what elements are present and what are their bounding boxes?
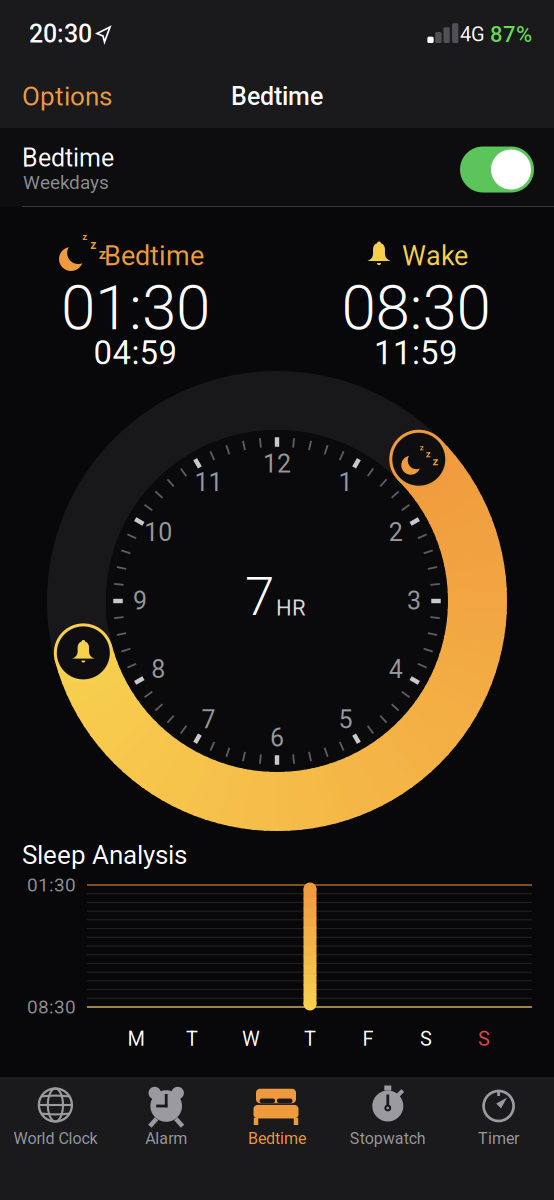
staticText: 04:59 xyxy=(93,334,177,372)
staticText: T xyxy=(186,1027,198,1051)
button[interactable]: Bedtime xyxy=(222,1078,332,1200)
staticText: Options xyxy=(22,81,112,112)
staticText: T xyxy=(304,1027,316,1051)
staticText: z xyxy=(432,455,438,468)
button[interactable]: Stopwatch xyxy=(333,1078,443,1200)
staticText: 01:30 xyxy=(27,874,76,896)
staticText: Weekdays xyxy=(23,171,109,194)
button[interactable]: Bedtime Weekdays toggle xyxy=(460,146,534,192)
staticText: 20:30 xyxy=(29,19,92,49)
staticText: 7 xyxy=(245,566,274,628)
button[interactable]: World Clock xyxy=(0,1078,110,1200)
staticText: 01:30 xyxy=(61,272,210,344)
staticText: Timer xyxy=(478,1129,519,1148)
staticText: 11 xyxy=(194,468,222,497)
staticText: 3 xyxy=(407,586,421,616)
staticText: z xyxy=(99,245,106,262)
staticText: 9 xyxy=(133,586,147,616)
staticText: 5 xyxy=(338,705,352,734)
staticText: Bedtime xyxy=(248,1129,306,1148)
staticText: z xyxy=(420,443,424,452)
staticText: Bedtime xyxy=(231,82,323,111)
staticText: 7 xyxy=(201,705,215,734)
staticText: S xyxy=(478,1027,490,1051)
staticText: 8 xyxy=(151,655,165,684)
staticText: 10 xyxy=(144,518,172,547)
staticText: HR xyxy=(276,595,306,621)
button[interactable]: Options xyxy=(22,71,182,121)
button[interactable]: Alarm xyxy=(111,1078,221,1200)
staticText: 6 xyxy=(270,723,284,753)
staticText: 4G xyxy=(460,23,485,46)
staticText: 12 xyxy=(263,449,291,479)
staticText: Sleep Analysis xyxy=(22,840,187,870)
staticText: W xyxy=(242,1027,260,1051)
staticText: Bedtime xyxy=(22,143,114,173)
staticText: World Clock xyxy=(13,1129,97,1148)
staticText: z xyxy=(426,448,431,459)
staticText: Alarm xyxy=(145,1129,187,1148)
staticText: S xyxy=(420,1027,432,1051)
staticText: 08:30 xyxy=(341,272,490,344)
staticText: 87% xyxy=(490,22,532,47)
staticText: Wake xyxy=(402,240,468,272)
staticText: 4 xyxy=(389,655,403,684)
staticText: 2 xyxy=(389,518,403,547)
staticText: Stopwatch xyxy=(350,1129,426,1148)
staticText: z xyxy=(90,238,96,252)
staticText: M xyxy=(127,1027,144,1051)
button[interactable]: Timer xyxy=(444,1078,554,1200)
staticText: 08:30 xyxy=(27,996,76,1018)
staticText: z xyxy=(82,231,87,242)
staticText: Bedtime xyxy=(104,240,204,272)
staticText: 1 xyxy=(338,468,352,497)
staticText: 11:59 xyxy=(374,334,458,372)
staticText: F xyxy=(362,1027,373,1051)
